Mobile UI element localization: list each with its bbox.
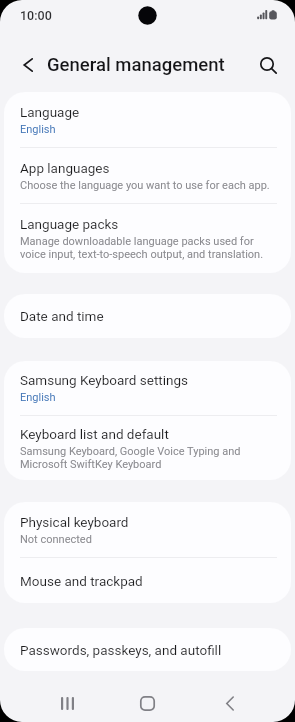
button[interactable]: Mouse and trackpad <box>4 558 291 603</box>
button[interactable]: Physical keyboard <box>4 502 291 557</box>
staticText: Mouse and trackpad <box>20 573 143 589</box>
staticText: Samsung Keyboard, Google Voice Typing an… <box>20 445 241 458</box>
staticText: Date and time <box>20 308 104 324</box>
staticText: Language packs <box>20 216 119 232</box>
button[interactable] <box>250 49 282 81</box>
staticText: Language <box>20 104 80 120</box>
staticText: Passwords, passkeys, and autofill <box>20 642 222 658</box>
staticText: Microsoft SwiftKey Keyboard <box>20 458 162 471</box>
button[interactable]: Samsung Keyboard settings <box>4 361 291 415</box>
button[interactable] <box>12 49 44 81</box>
staticText: Manage downloadable language packs used … <box>20 235 254 248</box>
button[interactable]: Language packs <box>4 204 291 273</box>
button[interactable]: Keyboard list and default <box>4 416 291 480</box>
staticText: English <box>20 123 56 136</box>
staticText: voice input, text-to-speech output, and … <box>20 248 264 261</box>
button[interactable]: App languages <box>4 148 291 203</box>
button[interactable]: Date and time <box>4 294 291 338</box>
button[interactable]: Language <box>4 92 291 147</box>
staticText: General management <box>47 54 225 76</box>
staticText: Not connected <box>20 533 92 546</box>
staticText: App languages <box>20 160 110 176</box>
staticText: English <box>20 391 56 404</box>
staticText: Keyboard list and default <box>20 426 169 442</box>
staticText: 10:00 <box>20 8 52 23</box>
staticText: Choose the language you want to use for … <box>20 179 270 192</box>
staticText: Samsung Keyboard settings <box>20 372 189 388</box>
button[interactable]: Passwords, passkeys, and autofill <box>4 628 291 671</box>
staticText: Physical keyboard <box>20 514 129 530</box>
